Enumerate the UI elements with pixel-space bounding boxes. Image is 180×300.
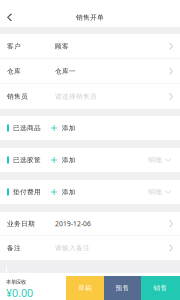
button[interactable]: 添加 (41, 118, 81, 138)
button[interactable]: 添加 (41, 182, 81, 202)
button[interactable]: 销售 (141, 276, 180, 300)
staticText: ¥0.00 (6, 286, 33, 300)
button[interactable]: 添加 (41, 150, 81, 170)
staticText: 请选择销售员 (55, 92, 97, 101)
staticText: 备注 (7, 244, 21, 252)
staticText: 仓库 (7, 67, 21, 75)
staticText: 2019-12-06 (55, 219, 91, 228)
staticText: 业务日期 (7, 220, 35, 228)
staticText: 请输入备注 (55, 244, 90, 252)
staticText: 垫付费用 (13, 188, 41, 196)
staticText: 顾客 (55, 42, 69, 50)
staticText: 本单应收 (6, 279, 26, 285)
staticText: 明细 (148, 156, 162, 164)
button[interactable]: 预售 (104, 276, 141, 300)
button[interactable]: 仓库 (0, 59, 180, 84)
button[interactable]: 明细 (148, 150, 180, 170)
button[interactable]: 草稿 (66, 276, 104, 300)
staticText: 仓库一 (55, 67, 76, 75)
button[interactable]: 明细 (148, 182, 180, 202)
staticText: 添加 (62, 156, 76, 164)
staticText: 已选商品 (13, 124, 41, 132)
button[interactable]: 销售员 (0, 84, 180, 109)
staticText: 客户 (7, 42, 21, 50)
button[interactable]: 客户 (0, 34, 180, 59)
staticText: 销售员 (7, 92, 28, 101)
staticText: 添加 (62, 188, 76, 196)
staticText: 销售 (153, 284, 167, 292)
staticText: 预售 (115, 284, 129, 292)
staticText: 明细 (148, 188, 162, 196)
staticText: 已选胶筐 (13, 156, 41, 164)
button[interactable]: 备注 (0, 236, 180, 260)
staticText: 销售开单 (76, 13, 104, 22)
staticText: 添加 (62, 124, 76, 132)
staticText: 草稿 (78, 284, 92, 292)
button[interactable]: 业务日期 (0, 212, 180, 236)
button[interactable]: Back (0, 8, 24, 27)
